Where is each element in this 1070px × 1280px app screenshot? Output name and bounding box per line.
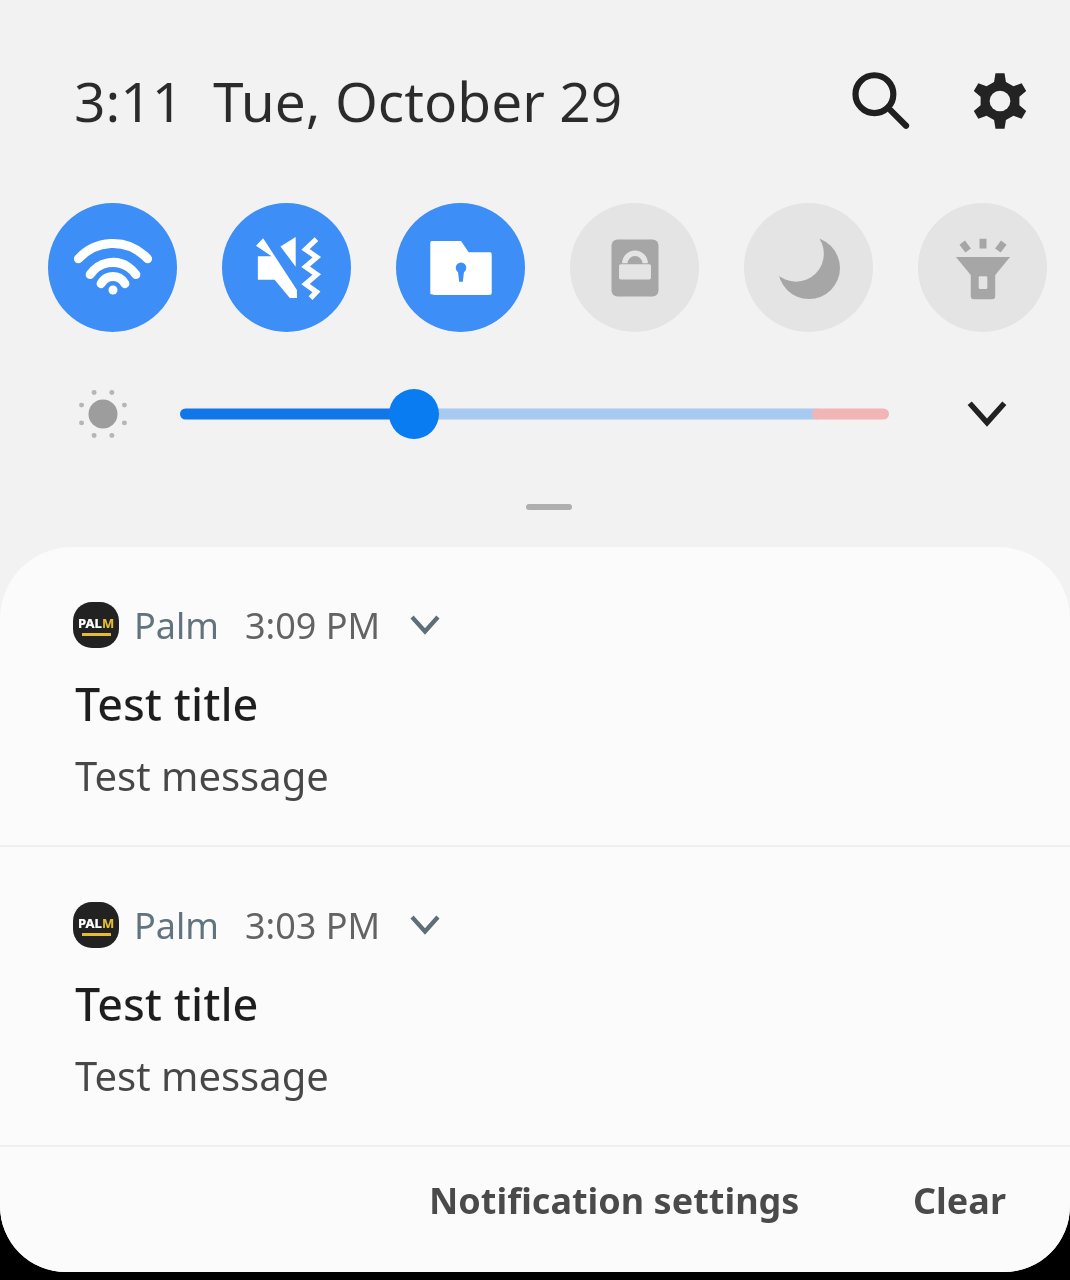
button[interactable]: Mute <box>222 203 351 332</box>
button[interactable]: Do not disturb <box>744 203 873 332</box>
button[interactable]: Flashlight <box>918 203 1047 332</box>
staticText: Test message <box>75 1048 329 1102</box>
staticText: Test title <box>75 673 259 734</box>
staticText: Notification settings <box>429 1176 800 1225</box>
button[interactable]: Expand quick settings <box>947 374 1027 454</box>
staticText: Test title <box>75 973 259 1034</box>
button[interactable]: Clear <box>887 1158 1032 1243</box>
staticText: Test message <box>75 748 329 802</box>
button[interactable]: Secure Folder <box>396 203 525 332</box>
button[interactable]: Settings <box>950 51 1050 151</box>
button[interactable]: PAL <box>0 847 1070 1145</box>
staticText: 3:11 <box>74 63 184 138</box>
staticText: Clear <box>913 1176 1006 1225</box>
staticText: Palm <box>134 901 219 950</box>
staticText: PAL <box>78 914 102 932</box>
staticText: PAL <box>78 614 102 632</box>
staticText: Tue, October 29 <box>213 63 623 138</box>
button[interactable]: Search <box>830 51 930 151</box>
staticText: Palm <box>134 601 219 650</box>
staticText: 3:09 PM <box>245 601 381 650</box>
button[interactable]: Notification settings <box>403 1158 826 1243</box>
button[interactable]: Wi-Fi <box>48 203 177 332</box>
button[interactable]: Auto rotate <box>570 203 699 332</box>
staticText: 3:03 PM <box>245 901 381 950</box>
button[interactable]: PAL <box>0 547 1070 845</box>
staticText: M <box>102 614 115 632</box>
staticText: M <box>102 914 115 932</box>
